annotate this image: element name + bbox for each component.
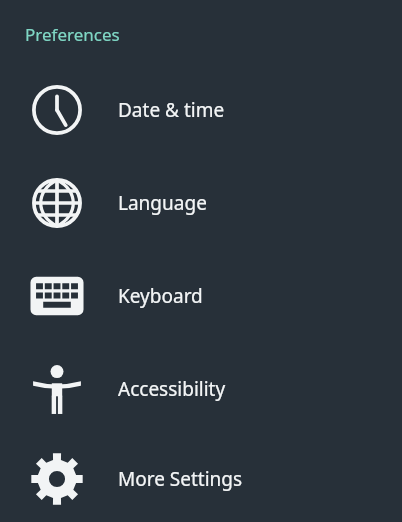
button[interactable]: Keyboard: [0, 249, 402, 342]
staticText: Language: [118, 190, 207, 216]
staticText: Date & time: [118, 97, 225, 123]
staticText: Accessibility: [118, 376, 226, 402]
button[interactable]: Language: [0, 156, 402, 249]
staticText: Keyboard: [118, 283, 203, 309]
staticText: Preferences: [25, 23, 120, 46]
button[interactable]: More Settings: [0, 435, 402, 522]
staticText: More Settings: [118, 466, 243, 492]
button[interactable]: Accessibility: [0, 342, 402, 435]
button[interactable]: Date & time: [0, 63, 402, 156]
